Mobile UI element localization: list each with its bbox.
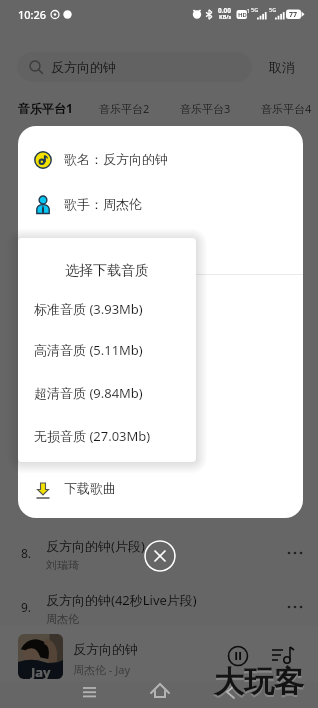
staticText: KB/s [219, 13, 232, 20]
button[interactable]: 标准音质 (3.93Mb) [18, 288, 196, 330]
button[interactable]: 6. [0, 418, 318, 472]
staticText: 选择下载音质 [18, 262, 196, 280]
staticText: 歌名：反方向的钟 [64, 151, 168, 167]
staticText: 群星 [46, 342, 68, 356]
staticText: 周杰伦 - Jay [73, 662, 131, 677]
staticText: 音乐平台3 [180, 101, 231, 116]
staticText: 反方向的钟 [73, 641, 138, 657]
staticText: 反方向的钟(Live) [46, 267, 143, 285]
button[interactable]: 9. [0, 580, 318, 634]
button[interactable]: 8. [0, 526, 318, 580]
button[interactable]: 10. [0, 634, 318, 688]
staticText: 周杰伦 [46, 612, 79, 626]
button[interactable]: More options [280, 268, 310, 298]
staticText: 时长：04:15 [64, 286, 137, 304]
staticText: 反方向的钟 [51, 59, 116, 75]
staticText: 反方向的钟 [46, 159, 111, 175]
button[interactable]: 取消 [258, 52, 306, 82]
staticText: 反方向的钟(42秒Live片段) [46, 591, 197, 609]
button[interactable]: 3. [0, 256, 318, 310]
staticText: 超清音质 (9.84Mb) [34, 384, 143, 402]
staticText: 刘瑞琦 [46, 558, 79, 572]
button[interactable]: More options [280, 214, 310, 244]
button[interactable]: Close [144, 540, 176, 572]
button[interactable]: More options [280, 430, 310, 460]
staticText: 1 [247, 8, 250, 15]
button[interactable]: 高清音质 (5.11Mb) [18, 329, 196, 371]
staticText: 反方向的钟 [46, 213, 111, 229]
button[interactable]: 专辑：范特西 [18, 227, 303, 272]
button[interactable]: 无损音质 (27.03Mb) [18, 415, 196, 457]
button[interactable]: 来源：音乐平台1 [18, 362, 303, 407]
button[interactable]: 音乐平台3 [180, 96, 231, 120]
staticText: 周杰伦 [46, 666, 79, 680]
staticText: 来源：音乐平台1 [64, 376, 163, 394]
staticText: 杰威尔 [46, 450, 79, 464]
button[interactable]: 歌手：周杰伦 [18, 182, 303, 227]
button[interactable]: Playlist [270, 642, 296, 668]
staticText: 9. [21, 599, 32, 615]
staticText: 反方向的钟 [46, 429, 111, 445]
staticText: 10. [21, 653, 38, 669]
staticText: 播放歌曲 [64, 421, 116, 437]
button[interactable]: 下载歌曲 [18, 466, 303, 511]
button[interactable]: More options [280, 484, 310, 514]
staticText: 0.00 [218, 6, 231, 15]
button[interactable]: 7. [0, 472, 318, 526]
button[interactable]: Pause [226, 644, 250, 668]
staticText: 音乐平台4 [261, 101, 312, 116]
button[interactable]: 音乐平台2 [99, 96, 150, 120]
button[interactable]: 超清音质 (9.84Mb) [18, 372, 196, 414]
staticText: 音乐平台2 [99, 101, 150, 116]
button[interactable]: 播放歌曲 [18, 407, 303, 452]
staticText: 周杰伦 [46, 234, 79, 248]
staticText: 取消 [269, 59, 295, 75]
staticText: 大玩客 [214, 665, 304, 703]
staticText: 无损音质 (27.03Mb) [34, 427, 151, 445]
staticText: 77 [289, 10, 298, 20]
staticText: 大玩客 [214, 663, 304, 701]
staticText: 反方向的钟(片段) [46, 375, 145, 393]
button[interactable]: 歌名：反方向的钟 [18, 137, 303, 182]
staticText: 反方向的钟(翻唱) [46, 483, 145, 501]
staticText: 标准音质 (3.93Mb) [34, 300, 143, 318]
button[interactable]: 5. [0, 364, 318, 418]
button[interactable]: More options [280, 646, 310, 676]
button[interactable]: 大小：3.93Mb [18, 317, 303, 362]
button[interactable]: 2. [0, 202, 318, 256]
staticText: 反方向的钟(片段) [46, 537, 145, 555]
staticText: 2. [21, 221, 32, 237]
button[interactable]: 音乐平台4 [261, 96, 312, 120]
staticText: 高清音质 (5.11Mb) [34, 341, 143, 359]
button[interactable]: More options [280, 592, 310, 622]
button[interactable]: 音乐平台1 [18, 96, 73, 120]
button[interactable]: 时长：04:15 [18, 272, 303, 317]
staticText: 5G [269, 6, 277, 13]
button[interactable]: More options [280, 538, 310, 568]
staticText: Jay [31, 663, 51, 679]
button[interactable]: 4. [0, 310, 318, 364]
button[interactable]: More options [280, 322, 310, 352]
button[interactable]: 1. [0, 148, 318, 202]
staticText: 5G [251, 6, 259, 13]
button[interactable]: More options [280, 376, 310, 406]
staticText: 歌手：周杰伦 [64, 196, 142, 212]
staticText: 音乐平台1 [18, 100, 73, 116]
staticText: HD [238, 11, 247, 19]
button[interactable]: More options [280, 160, 310, 190]
staticText: 10:26 [18, 7, 47, 22]
staticText: 8. [21, 545, 32, 561]
staticText: 下载歌曲 [64, 480, 116, 496]
button[interactable]: 反方向的钟 [17, 52, 252, 82]
